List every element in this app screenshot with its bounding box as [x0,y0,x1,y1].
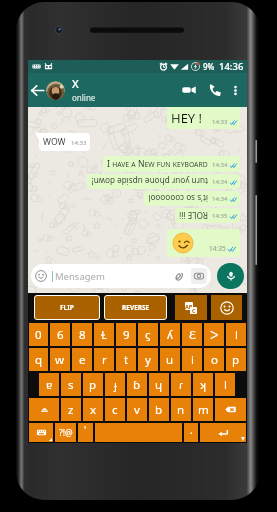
staticText: w [55,352,65,368]
button[interactable]: 14:35 [167,229,240,257]
button[interactable]: 9 [116,323,136,346]
button[interactable]: ?!@ [55,423,76,442]
button[interactable]: n [171,398,191,421]
button[interactable]: w [50,348,70,371]
button[interactable]: Emoji [211,295,242,320]
button[interactable]: i [182,348,202,371]
button[interactable]: Video call [176,73,202,107]
button[interactable]: Change language [175,295,207,320]
button[interactable]: x [83,398,103,421]
staticText: i [191,352,194,368]
button[interactable]: REVERSE [104,295,167,320]
button[interactable]: ʞ [193,373,213,396]
button[interactable]: Attach [171,269,186,284]
button[interactable]: 6 [50,323,70,346]
staticText: 14:33 [212,118,228,126]
button[interactable]: p [83,373,103,396]
staticText: p [232,352,240,368]
staticText: FLIP [60,303,74,312]
button[interactable]: 8 [72,323,92,346]
button[interactable]: ɟ [105,373,125,396]
staticText: ϛ [145,327,151,343]
staticText: s [68,377,74,393]
button[interactable]: Back [28,73,46,107]
button[interactable]: ɾ [171,373,191,396]
button[interactable]: 0 [29,323,48,346]
button[interactable]: b [149,398,169,421]
staticText: 14:35 [212,212,228,220]
staticText: 8 [79,327,86,343]
button[interactable]: Ɛ [182,323,202,346]
button[interactable]: HEY ! [167,107,240,129]
button[interactable]: r [94,348,114,371]
button[interactable]: ɓ [127,373,147,396]
staticText: n [177,402,185,418]
staticText: m [198,402,209,418]
button[interactable]: WOW [39,133,90,151]
button[interactable]: ɥ [149,373,169,396]
button[interactable]: m [193,398,213,421]
button[interactable]: Record voice message [217,263,244,289]
staticText: ' [84,423,87,437]
staticText: online [72,92,96,103]
button[interactable]: Shift [29,398,59,421]
button[interactable]: Mensagem [31,264,211,288]
button[interactable]: z [61,398,81,421]
button[interactable]: q [29,348,48,371]
button[interactable]: e [72,348,92,371]
staticText: Ɛ [189,327,196,343]
button[interactable]: ɐ [39,373,59,396]
staticText: ?!@ [59,427,73,439]
button[interactable]: o [204,348,224,371]
button[interactable]: Enter [200,423,246,442]
button[interactable]: y [138,348,158,371]
button[interactable]: . [184,423,198,442]
staticText: WOW [43,136,66,148]
staticText: ɾ [179,377,183,393]
button[interactable]: p [226,348,246,371]
button[interactable]: Profile photo [46,81,65,100]
button[interactable]: ' [78,423,93,442]
button[interactable]: t [116,348,136,371]
button[interactable]: it's so cooooool [144,191,240,206]
staticText: ʞ [200,377,207,393]
staticText: 9% [203,61,215,72]
staticText: I HAVE A NEW FUN KEYBOARD [107,158,208,170]
button[interactable]: FLIP [34,295,100,320]
button[interactable]: ϛ [138,323,158,346]
staticText: . [190,423,193,437]
staticText: e [79,352,86,368]
staticText: REVERSE [122,303,150,312]
staticText: X [72,76,79,91]
button[interactable]: l [215,373,235,396]
button[interactable]: l [226,323,246,346]
staticText: 14:36 [219,60,244,73]
button[interactable]: I HAVE A NEW FUN KEYBOARD [103,156,240,172]
staticText: z [68,402,74,418]
button[interactable]: u [160,348,180,371]
button[interactable]: turn your phone upside down! [87,174,240,189]
staticText: AB [185,303,193,310]
staticText: 14:34 [212,178,228,186]
staticText: l [235,327,238,343]
staticText: 9 [123,327,130,343]
staticText: 14:34 [212,161,228,169]
button[interactable]: ᐳ [204,323,224,346]
staticText: y [145,352,151,368]
button[interactable]: c [105,398,125,421]
staticText: 6 [57,327,64,343]
button[interactable]: ROLE iii [175,208,240,223]
button[interactable]: Call [202,73,227,107]
button[interactable]: Ɫ [94,323,114,346]
button[interactable]: s [61,373,81,396]
staticText: turn your phone upside down! [91,176,208,187]
button[interactable]: ʎ [160,323,180,346]
button[interactable]: Camera [191,268,207,284]
staticText: x [90,402,97,418]
staticText: 14:34 [212,195,228,203]
button[interactable]: More options [227,73,244,107]
button[interactable]: v [127,398,147,421]
button[interactable]: Backspace [215,398,246,421]
button[interactable]: Keyboard settings [29,423,53,442]
